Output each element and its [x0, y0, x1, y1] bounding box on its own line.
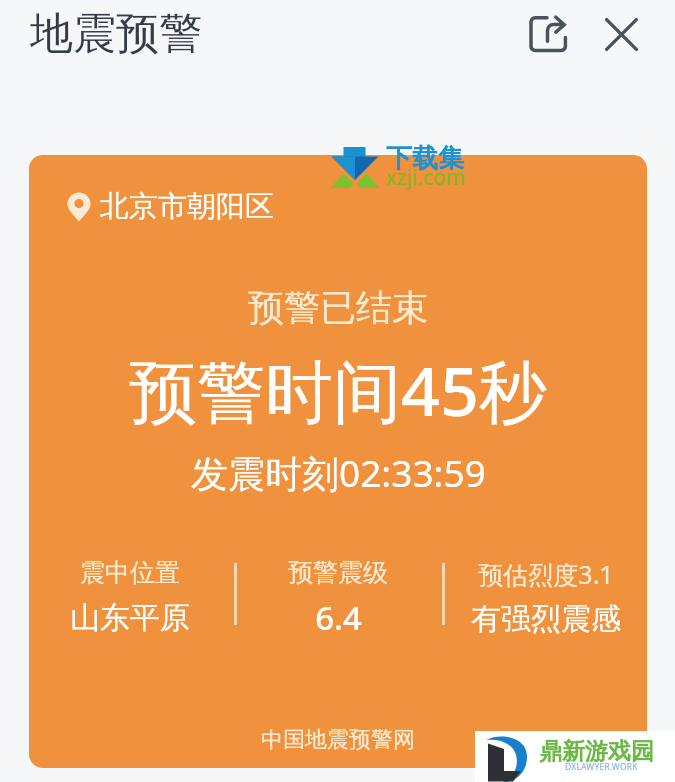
staticText: 预警已结束 [248, 285, 428, 330]
staticText: 北京市朝阳区 [100, 188, 274, 225]
staticText: 山东平原 [70, 599, 190, 637]
staticText: xzji.com [386, 163, 466, 192]
button[interactable]: Close [595, 8, 647, 60]
staticText: 鼎新游戏园 [539, 737, 654, 766]
button[interactable]: 北京市朝阳区 [29, 155, 647, 768]
staticText: 发震时刻02:33:59 [191, 447, 486, 498]
staticText: 有强烈震感 [471, 600, 621, 638]
staticText: 地震预警 [30, 7, 202, 61]
staticText: 震中位置 [80, 557, 180, 588]
staticText: DXLAWYER.WORK [565, 761, 638, 773]
staticText: 预警震级 [288, 557, 388, 588]
button[interactable]: Share [522, 8, 574, 60]
staticText: 下载集 [386, 142, 464, 175]
staticText: 预估烈度3.1 [478, 557, 614, 591]
staticText: 6.4 [315, 595, 362, 640]
staticText: 中国地震预警网 [261, 726, 415, 754]
staticText: 预警时间45秒 [129, 343, 547, 436]
